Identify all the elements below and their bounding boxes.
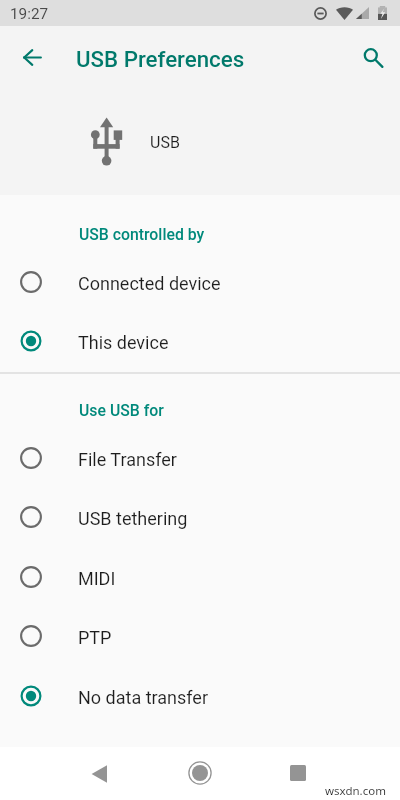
- button[interactable]: Recent apps: [278, 753, 318, 793]
- button[interactable]: Navigate up: [12, 37, 52, 77]
- button[interactable]: No data transfer: [0, 666, 400, 725]
- button[interactable]: This device: [0, 311, 400, 370]
- staticText: Use USB for: [79, 401, 164, 420]
- staticText: No data transfer: [78, 687, 209, 708]
- button[interactable]: PTP: [0, 606, 400, 665]
- button[interactable]: File Transfer: [0, 428, 400, 487]
- staticText: USB Preferences: [76, 46, 245, 72]
- button[interactable]: USB tethering: [0, 487, 400, 546]
- button[interactable]: MIDI: [0, 547, 400, 606]
- staticText: USB controlled by: [79, 225, 205, 244]
- staticText: MIDI: [78, 568, 116, 589]
- staticText: 19:27: [10, 5, 49, 23]
- staticText: This device: [78, 332, 169, 353]
- button[interactable]: Search: [352, 36, 392, 76]
- button[interactable]: Connected device: [0, 252, 400, 311]
- staticText: wsxdn.com: [325, 783, 386, 799]
- staticText: Connected device: [78, 273, 221, 294]
- button[interactable]: Back: [79, 754, 119, 794]
- staticText: USB tethering: [78, 508, 188, 529]
- staticText: PTP: [78, 627, 112, 648]
- staticText: File Transfer: [78, 449, 177, 470]
- staticText: USB: [150, 133, 180, 152]
- button[interactable]: Home: [180, 753, 220, 793]
